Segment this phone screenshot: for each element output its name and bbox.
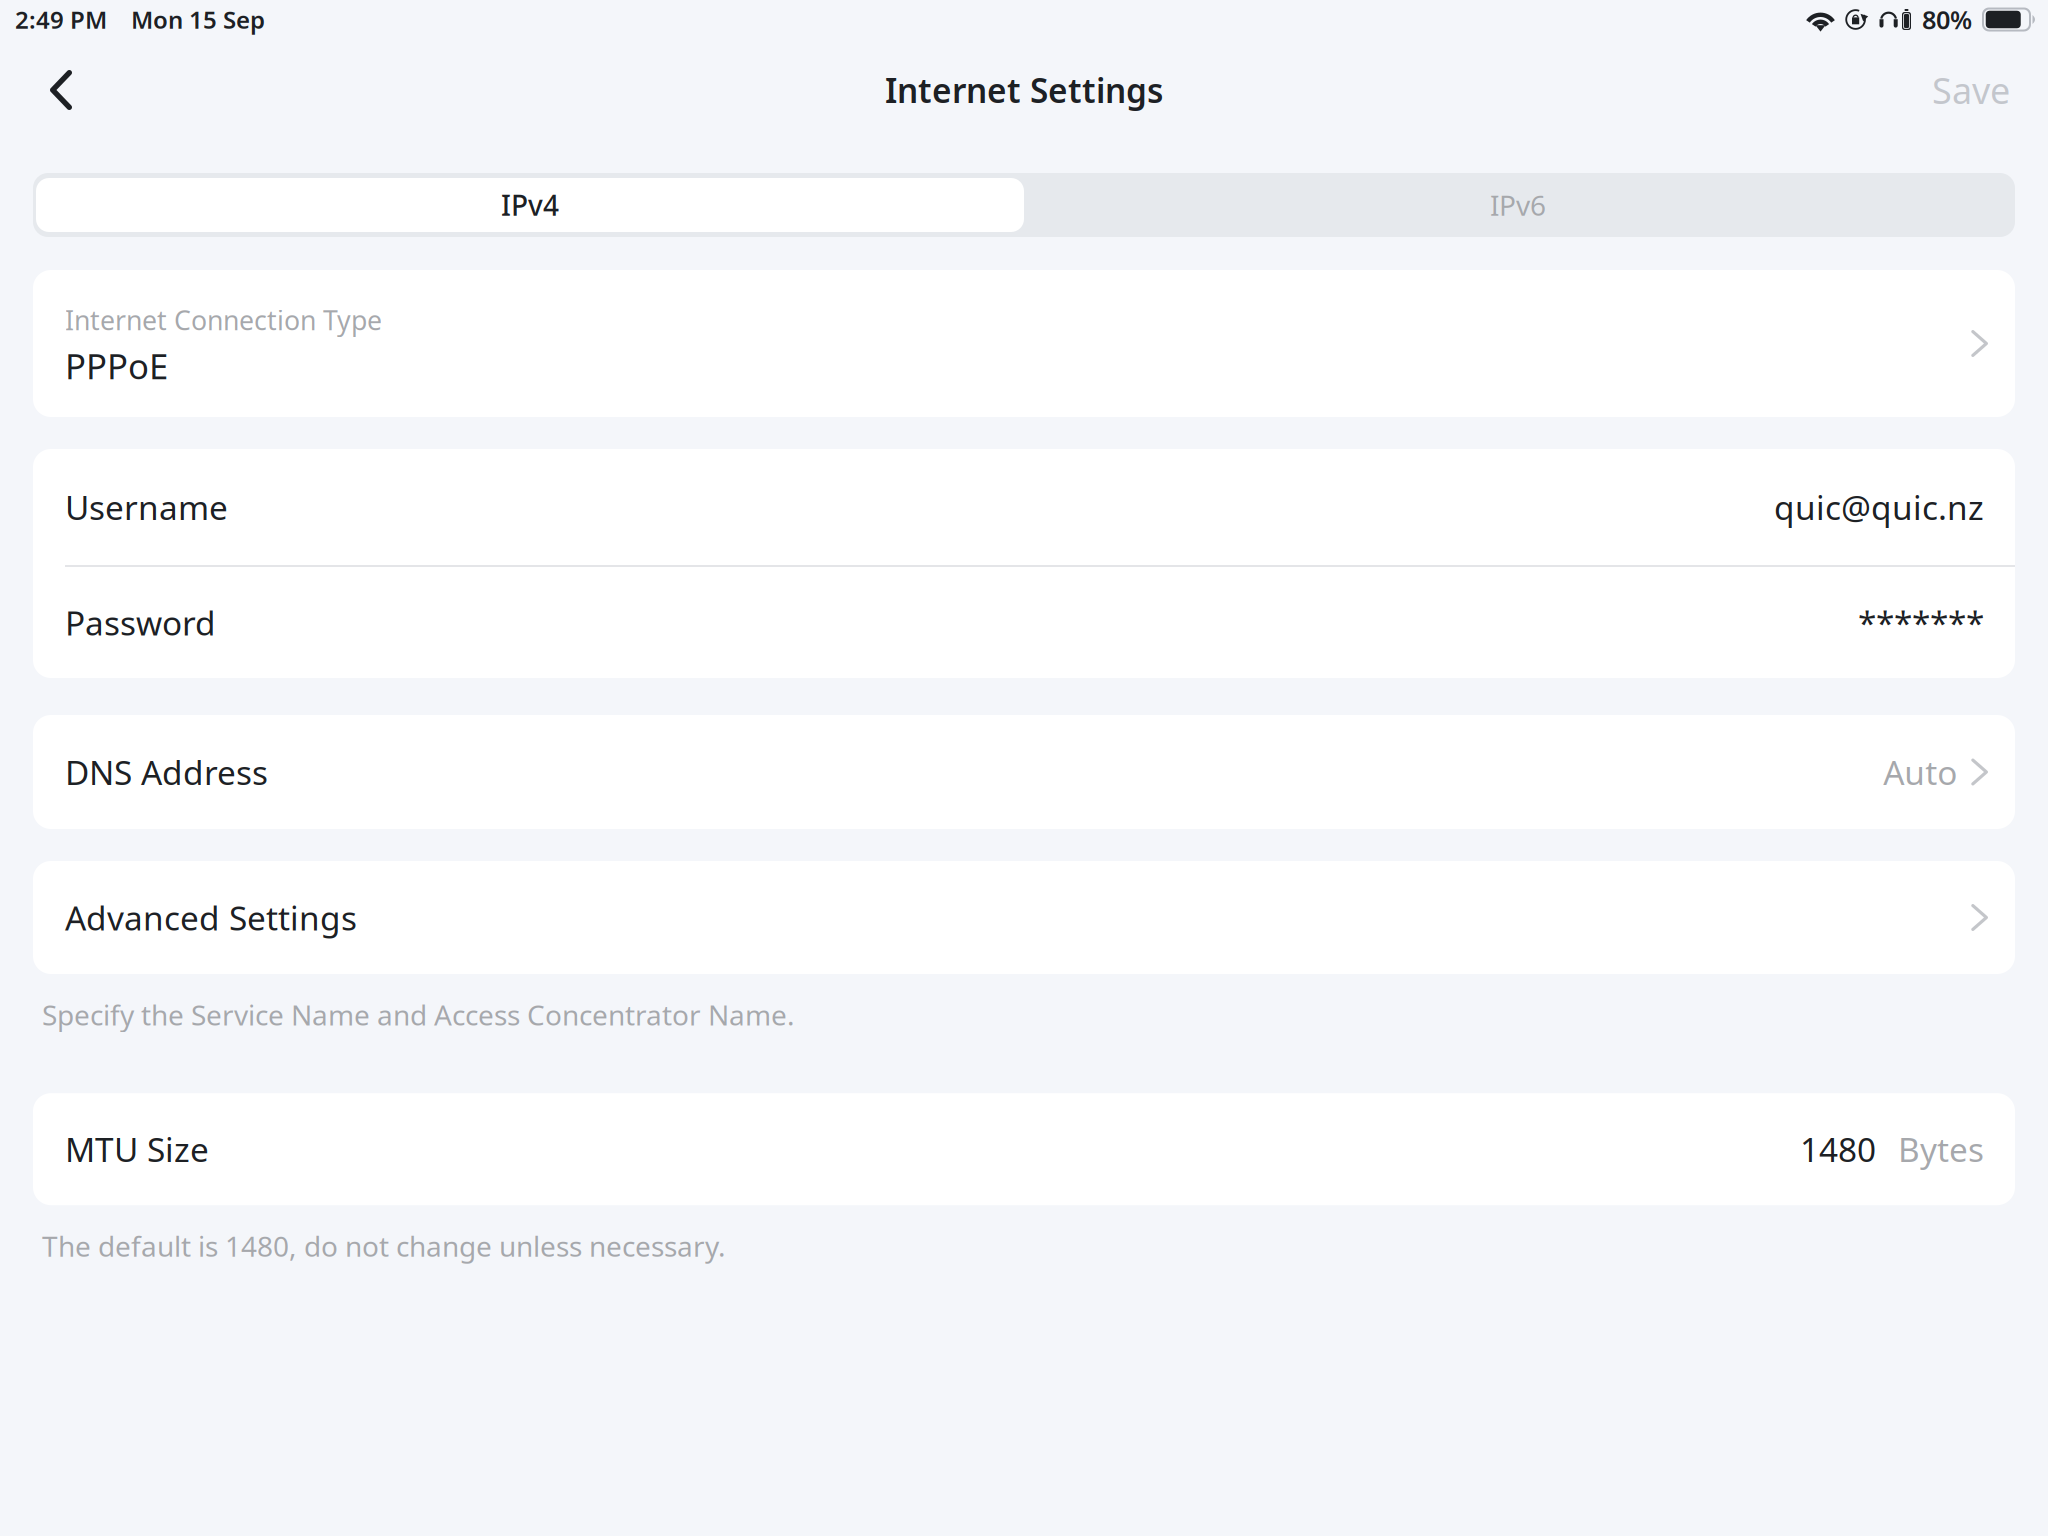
staticText: PPPoE xyxy=(65,343,168,389)
button[interactable]: Password xyxy=(33,567,2015,678)
staticText: 80% xyxy=(1922,3,1972,36)
staticText: Save xyxy=(1932,66,2010,114)
staticText: IPv6 xyxy=(1490,186,1546,224)
staticText: Auto xyxy=(1883,750,1957,794)
staticText: quic@quic.nz xyxy=(1774,485,1984,529)
button[interactable]: IPv6 xyxy=(1024,173,2015,237)
button[interactable]: Advanced Settings xyxy=(33,861,2015,974)
staticText: Username xyxy=(65,485,228,529)
staticText: MTU Size xyxy=(65,1127,209,1171)
staticText: IPv4 xyxy=(501,186,559,224)
button[interactable]: Back xyxy=(28,52,94,128)
staticText: 2:49 PM xyxy=(15,4,107,35)
staticText: ******* xyxy=(1858,600,1984,645)
staticText: Mon 15 Sep xyxy=(131,4,265,35)
button[interactable]: Save xyxy=(1910,50,2015,130)
staticText: Password xyxy=(65,600,216,645)
button[interactable]: IPv4 xyxy=(33,173,1024,237)
staticText: DNS Address xyxy=(65,750,268,794)
staticText: The default is 1480, do not change unles… xyxy=(42,1227,726,1264)
button[interactable]: Internet Connection Type xyxy=(33,270,2015,417)
staticText: Internet Connection Type xyxy=(65,302,382,338)
staticText: Bytes xyxy=(1898,1127,1984,1171)
button[interactable]: DNS Address xyxy=(33,715,2015,829)
staticText: Internet Settings xyxy=(885,68,1163,112)
staticText: 1480 xyxy=(1800,1127,1876,1171)
button[interactable]: MTU Size xyxy=(33,1093,2015,1205)
button[interactable]: Username xyxy=(33,449,2015,565)
staticText: Specify the Service Name and Access Conc… xyxy=(42,996,795,1033)
staticText: Advanced Settings xyxy=(65,895,357,940)
